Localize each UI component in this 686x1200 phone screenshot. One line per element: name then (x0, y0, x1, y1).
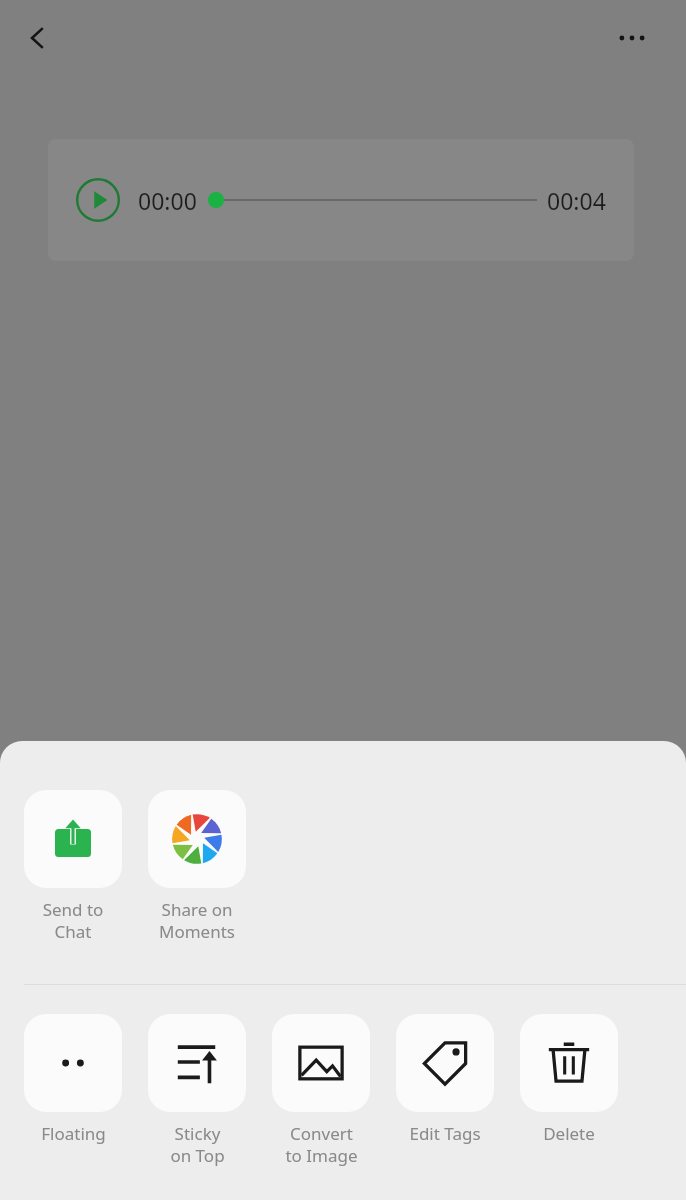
button[interactable]: Play (76, 178, 120, 222)
button[interactable]: Send to Chat (24, 790, 122, 943)
button[interactable]: Convert to Image (272, 1014, 370, 1167)
staticText: Floating (41, 1122, 106, 1145)
staticText: Convert to Image (285, 1122, 358, 1167)
staticText: Delete (543, 1122, 595, 1145)
button[interactable]: Floating (24, 1014, 122, 1145)
button[interactable]: Back (6, 6, 70, 70)
button[interactable]: Edit Tags (396, 1014, 494, 1145)
staticText: Send to Chat (24, 898, 122, 943)
button[interactable]: More options (600, 6, 664, 70)
staticText: Sticky on Top (170, 1122, 225, 1167)
staticText: 00:00 (138, 185, 197, 216)
button[interactable]: Play (48, 139, 634, 261)
staticText: Edit Tags (409, 1122, 481, 1145)
staticText: 00:04 (547, 185, 606, 216)
button[interactable]: Share on Moments (148, 790, 246, 943)
staticText: Share on Moments (159, 898, 235, 943)
button[interactable]: Delete (520, 1014, 618, 1145)
button[interactable]: Sticky on Top (148, 1014, 246, 1167)
